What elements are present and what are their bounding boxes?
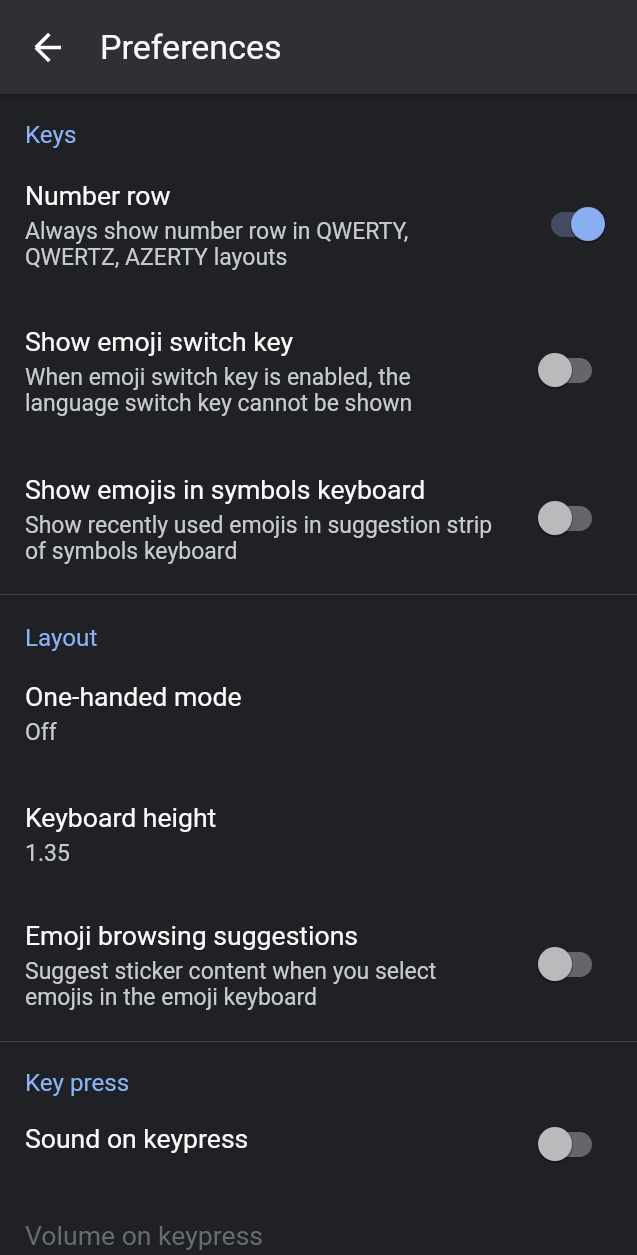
staticText: Volume on keypress	[25, 1220, 264, 1251]
staticText: Keys	[25, 121, 77, 149]
staticText: Key press	[25, 1069, 130, 1097]
button[interactable]: Keyboard height	[0, 772, 637, 891]
staticText: Show recently used emojis in suggestion …	[25, 512, 493, 565]
button[interactable]: Navigate up	[12, 12, 82, 82]
button[interactable]: Volume on keypress	[0, 1184, 637, 1255]
staticText: Show emojis in symbols keyboard	[25, 474, 426, 505]
button[interactable]: Show emoji switch key	[0, 296, 637, 444]
button[interactable]: Show emojis in symbols keyboard	[0, 444, 637, 594]
staticText: Layout	[25, 624, 98, 652]
staticText: Off	[25, 719, 57, 746]
staticText: Keyboard height	[25, 802, 217, 833]
staticText: When emoji switch key is enabled, the la…	[25, 364, 413, 417]
staticText: Suggest sticker content when you select …	[25, 958, 437, 1011]
staticText: Show emoji switch key	[25, 326, 293, 357]
button[interactable]: Number row	[0, 150, 637, 296]
button[interactable]: Sound on keypress	[0, 1097, 637, 1184]
staticText: 1.35	[25, 840, 70, 867]
staticText: Sound on keypress	[25, 1123, 249, 1154]
button[interactable]: One-handed mode	[0, 652, 637, 772]
staticText: One-handed mode	[25, 681, 242, 712]
staticText: Emoji browsing suggestions	[25, 920, 359, 951]
staticText: Number row	[25, 180, 171, 211]
button[interactable]: Emoji browsing suggestions	[0, 891, 637, 1041]
staticText: Preferences	[100, 27, 282, 67]
staticText: Always show number row in QWERTY, QWERTZ…	[25, 218, 409, 271]
